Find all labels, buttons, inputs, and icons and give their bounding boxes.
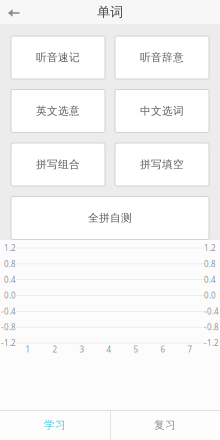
staticText: 1 [25, 344, 30, 355]
staticText: 学习 [44, 418, 66, 431]
button[interactable]: 复习 [110, 410, 220, 440]
staticText: -1.2 [204, 338, 219, 348]
staticText: -0.8 [1, 322, 16, 332]
button[interactable]: 学习 [0, 410, 110, 440]
staticText: 1.2 [4, 243, 16, 253]
staticText: 0.0 [4, 290, 16, 301]
staticText: 6 [160, 344, 165, 355]
staticText: 听音辞意 [140, 51, 184, 64]
button[interactable]: 拼写填空 [115, 143, 209, 186]
staticText: 0.0 [204, 290, 216, 301]
staticText: -0.8 [204, 322, 219, 332]
button[interactable]: 拼写组合 [11, 143, 105, 186]
staticText: -0.4 [1, 306, 16, 317]
staticText: -0.4 [204, 306, 219, 317]
staticText: 3 [79, 344, 84, 355]
button[interactable]: 中文选词 [115, 89, 209, 132]
staticText: 2 [52, 344, 57, 355]
staticText: 7 [187, 344, 192, 355]
button[interactable]: 听音辞意 [115, 36, 209, 79]
staticText: 0.4 [204, 274, 216, 285]
button[interactable]: 英文选意 [11, 89, 105, 132]
staticText: 4 [106, 344, 111, 355]
staticText: 0.4 [4, 274, 16, 285]
staticText: 0.8 [204, 258, 216, 269]
staticText: 拼写组合 [36, 158, 80, 171]
staticText: 单词 [97, 4, 123, 20]
button[interactable]: Back [0, 0, 27, 24]
staticText: 听音速记 [36, 51, 80, 64]
button[interactable]: 全拼自测 [11, 196, 209, 239]
staticText: 英文选意 [36, 104, 80, 117]
button[interactable]: 听音速记 [11, 36, 105, 79]
staticText: 0.8 [4, 258, 16, 269]
staticText: 中文选词 [140, 104, 184, 117]
staticText: 拼写填空 [140, 158, 184, 171]
staticText: 全拼自测 [88, 211, 132, 224]
staticText: 5 [133, 344, 138, 355]
staticText: 复习 [154, 418, 176, 431]
staticText: 1.2 [204, 243, 216, 253]
staticText: -1.2 [1, 338, 16, 348]
